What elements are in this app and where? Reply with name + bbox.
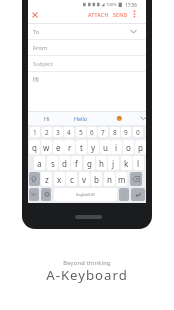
button[interactable]: 3 bbox=[53, 127, 63, 137]
staticText: English(US) bbox=[76, 192, 95, 197]
button[interactable]: r bbox=[64, 140, 75, 154]
button[interactable]: u bbox=[100, 140, 111, 154]
staticText: 7 bbox=[101, 128, 105, 137]
button[interactable]: w bbox=[41, 140, 52, 154]
staticText: k bbox=[124, 158, 129, 169]
button[interactable]: l bbox=[133, 156, 144, 170]
button[interactable]: y bbox=[88, 140, 99, 154]
button[interactable]: 2 bbox=[42, 127, 52, 137]
staticText: 17:56 bbox=[125, 2, 137, 8]
button[interactable]: h bbox=[96, 156, 107, 170]
staticText: 4 bbox=[67, 128, 71, 137]
staticText: . bbox=[123, 191, 125, 199]
button[interactable] bbox=[41, 188, 51, 201]
button[interactable]: v bbox=[79, 172, 90, 186]
staticText: l bbox=[137, 158, 140, 169]
staticText: e bbox=[56, 142, 61, 153]
staticText: 8 bbox=[113, 128, 117, 137]
button[interactable]: 1 bbox=[30, 127, 40, 137]
staticText: z bbox=[45, 174, 49, 185]
button[interactable]: x bbox=[54, 172, 65, 186]
button[interactable] bbox=[131, 188, 145, 201]
staticText: n bbox=[107, 174, 112, 185]
button[interactable]: 9 bbox=[121, 127, 131, 137]
staticText: 100% bbox=[106, 2, 117, 8]
button[interactable]: 0 bbox=[133, 127, 143, 137]
button[interactable]: i bbox=[111, 140, 122, 154]
staticText: p bbox=[138, 142, 143, 153]
button[interactable]: 6 bbox=[87, 127, 97, 137]
staticText: v bbox=[82, 174, 87, 185]
staticText: m bbox=[118, 174, 126, 185]
staticText: a bbox=[37, 158, 42, 169]
button[interactable]: e bbox=[53, 140, 64, 154]
staticText: y bbox=[91, 142, 96, 153]
button[interactable]: ATTACH bbox=[88, 12, 109, 19]
button[interactable]: To bbox=[28, 24, 146, 39]
staticText: t bbox=[80, 142, 83, 153]
staticText: Beyond thinking bbox=[0, 259, 174, 267]
staticText: u bbox=[103, 142, 108, 153]
button[interactable]: g bbox=[84, 156, 95, 170]
button[interactable]: 8 bbox=[110, 127, 120, 137]
staticText: To bbox=[33, 28, 40, 36]
staticText: 6 bbox=[90, 128, 94, 137]
button[interactable]: b bbox=[91, 172, 102, 186]
button[interactable] bbox=[29, 172, 40, 186]
button[interactable] bbox=[28, 9, 48, 23]
staticText: q bbox=[32, 142, 37, 153]
button[interactable] bbox=[130, 172, 142, 186]
button[interactable]: q bbox=[29, 140, 40, 154]
button[interactable]: k bbox=[121, 156, 132, 170]
button[interactable]: From bbox=[28, 40, 146, 55]
staticText: f bbox=[75, 158, 78, 169]
button[interactable]: a bbox=[34, 156, 45, 170]
button[interactable]: c bbox=[66, 172, 77, 186]
staticText: i bbox=[115, 142, 118, 153]
button[interactable]: !#1 bbox=[29, 188, 39, 201]
button[interactable]: 5 bbox=[76, 127, 86, 137]
staticText: 5 bbox=[79, 128, 83, 137]
button[interactable]: SEND bbox=[113, 12, 128, 19]
button[interactable]: n bbox=[104, 172, 115, 186]
staticText: 9 bbox=[124, 128, 128, 137]
staticText: d bbox=[62, 158, 67, 169]
button[interactable]: p bbox=[135, 140, 146, 154]
staticText: o bbox=[126, 142, 131, 153]
button[interactable]: j bbox=[108, 156, 119, 170]
staticText: r bbox=[68, 142, 72, 153]
button[interactable]: . bbox=[119, 188, 129, 201]
staticText: Hi bbox=[33, 75, 39, 83]
staticText: s bbox=[51, 158, 55, 169]
staticText: g bbox=[87, 158, 92, 169]
button[interactable]: z bbox=[41, 172, 52, 186]
button[interactable]: s bbox=[47, 156, 58, 170]
button[interactable] bbox=[131, 10, 138, 18]
button[interactable] bbox=[116, 115, 123, 122]
button[interactable]: English(US) bbox=[54, 188, 117, 201]
staticText: 0 bbox=[136, 128, 140, 137]
staticText: !#1 bbox=[31, 192, 37, 197]
button[interactable]: f bbox=[71, 156, 82, 170]
button[interactable]: 4 bbox=[64, 127, 74, 137]
staticText: 3 bbox=[56, 128, 60, 137]
staticText: w bbox=[43, 142, 50, 153]
button[interactable]: Subject bbox=[28, 56, 146, 71]
button[interactable]: t bbox=[76, 140, 87, 154]
button[interactable]: Hello bbox=[74, 115, 88, 122]
button[interactable]: m bbox=[116, 172, 127, 186]
staticText: x bbox=[57, 174, 62, 185]
staticText: j bbox=[112, 158, 115, 169]
button[interactable] bbox=[140, 116, 147, 122]
staticText: A-Keyboard bbox=[0, 266, 174, 284]
staticText: From bbox=[33, 44, 48, 52]
staticText: c bbox=[70, 174, 74, 185]
staticText: h bbox=[99, 158, 104, 169]
button[interactable]: 7 bbox=[98, 127, 108, 137]
staticText: 2 bbox=[45, 128, 49, 137]
staticText: Subject bbox=[33, 60, 53, 68]
button[interactable]: o bbox=[123, 140, 134, 154]
button[interactable]: Hi bbox=[44, 115, 50, 122]
staticText: b bbox=[94, 174, 99, 185]
button[interactable]: d bbox=[59, 156, 70, 170]
